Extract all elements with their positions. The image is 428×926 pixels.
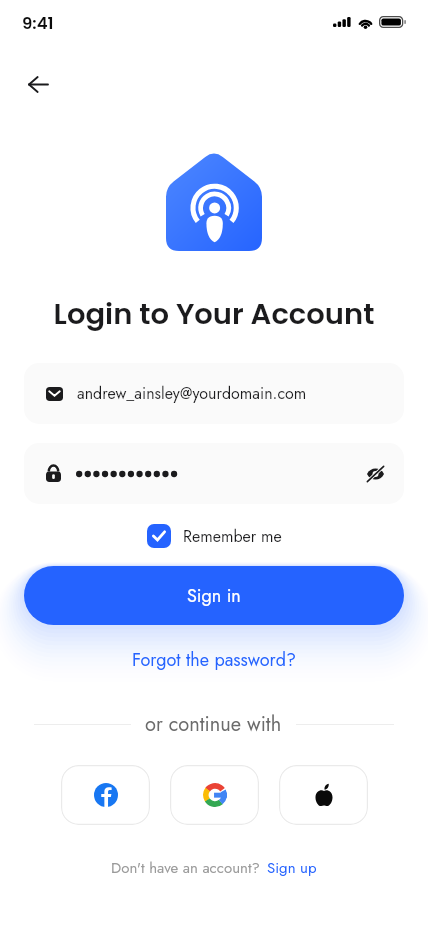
button[interactable]: Show password [24, 443, 404, 504]
staticText: or continue with [145, 710, 282, 739]
staticText: Login to Your Account [0, 294, 428, 335]
button[interactable]: Sign in with Facebook [61, 765, 150, 825]
button[interactable]: Sign in with Apple [279, 765, 368, 825]
button[interactable]: andrew_ainsley@yourdomain.com [24, 363, 404, 424]
button[interactable]: Sign in with Google [170, 765, 259, 825]
button[interactable]: Remember me [147, 524, 282, 548]
staticText: Sign in [187, 583, 241, 609]
button[interactable]: Show password [363, 462, 387, 486]
staticText: andrew_ainsley@yourdomain.com [77, 382, 307, 405]
staticText: Remember me [183, 525, 282, 548]
button[interactable]: Forgot the password? [126, 645, 303, 675]
staticText: Don't have an account? [111, 857, 260, 879]
button[interactable]: Sign up [267, 857, 317, 879]
button[interactable]: Back [15, 61, 61, 107]
button[interactable]: Sign in [24, 566, 404, 625]
staticText: Forgot the password? [132, 647, 297, 673]
staticText: 9:41 [22, 12, 54, 35]
